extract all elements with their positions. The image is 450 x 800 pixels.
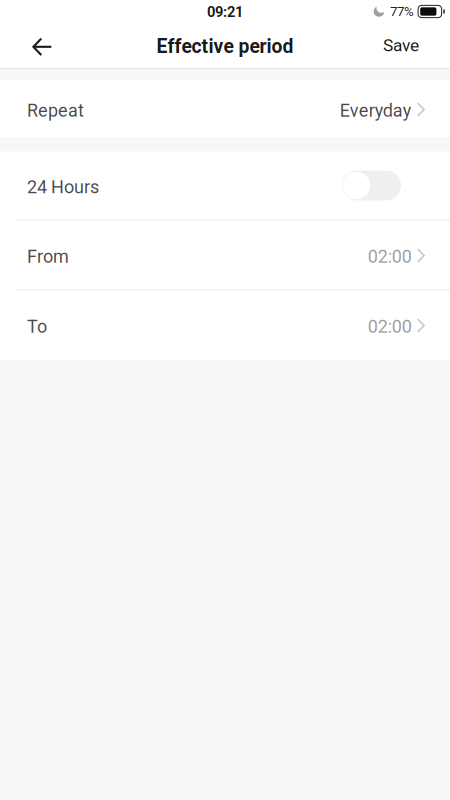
staticText: 09:21: [207, 3, 243, 21]
staticText: 77%: [390, 4, 414, 19]
button[interactable]: 24 Hours: [342, 170, 425, 200]
staticText: To: [27, 316, 47, 337]
staticText: 02:00: [368, 316, 412, 337]
staticText: Save: [383, 35, 419, 55]
button[interactable]: From: [0, 220, 450, 289]
staticText: Repeat: [27, 100, 84, 121]
staticText: From: [27, 246, 69, 267]
button[interactable]: To: [0, 290, 450, 359]
button[interactable]: Repeat: [0, 80, 450, 137]
button[interactable]: Save: [369, 28, 433, 66]
staticText: Everyday: [340, 100, 412, 121]
button[interactable]: Back: [0, 28, 66, 65]
staticText: 24 Hours: [27, 177, 99, 198]
button[interactable]: 24 Hours: [0, 151, 450, 219]
staticText: Effective period: [156, 35, 293, 58]
staticText: 02:00: [368, 246, 412, 267]
